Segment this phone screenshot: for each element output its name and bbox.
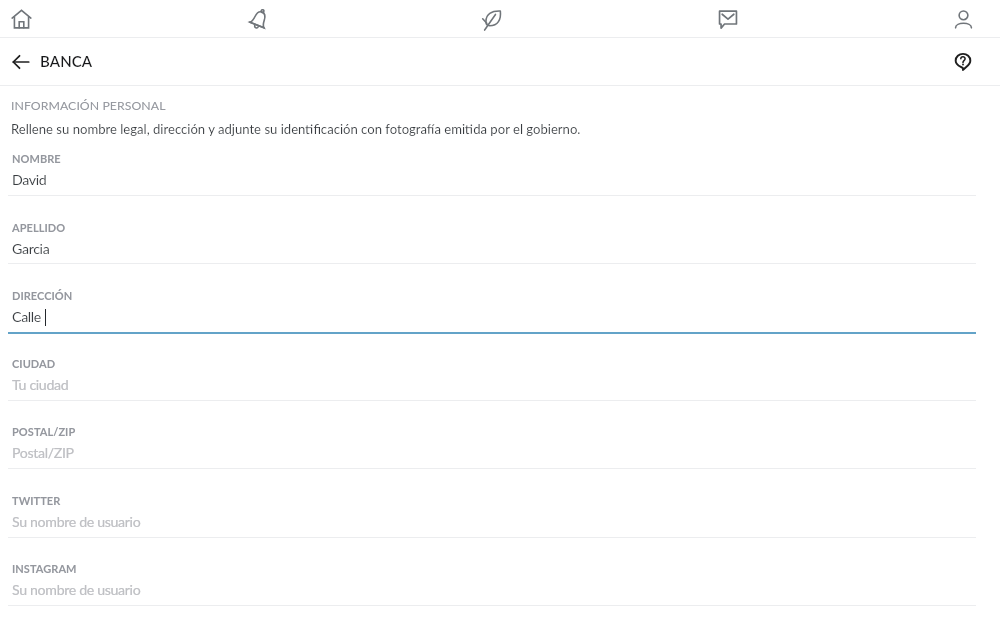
button[interactable] (8, 349, 976, 401)
button[interactable]: Back (3, 44, 39, 80)
staticText: DIRECCIÓN (12, 289, 73, 302)
staticText: Rellene su nombre legal, dirección y adj… (11, 121, 581, 137)
button[interactable] (8, 417, 976, 469)
button[interactable]: Eco (473, 0, 511, 38)
button[interactable] (8, 486, 976, 538)
button[interactable] (8, 213, 976, 265)
staticText: CIUDAD (12, 357, 56, 370)
staticText: Su nombre de usuario (12, 581, 141, 598)
staticText: Postal/ZIP (12, 444, 74, 461)
button[interactable]: Notifications (240, 0, 278, 38)
button[interactable] (8, 281, 976, 333)
staticText: NOMBRE (12, 152, 61, 165)
staticText: TWITTER (12, 494, 61, 507)
button[interactable]: Help (945, 44, 981, 80)
staticText: BANCA (40, 52, 93, 70)
button[interactable]: Messages (709, 0, 747, 38)
button[interactable]: Home (2, 0, 40, 38)
staticText: Tu ciudad (12, 376, 69, 393)
staticText: POSTAL/ZIP (12, 425, 76, 438)
button[interactable] (8, 144, 976, 196)
staticText: INSTAGRAM (12, 562, 77, 575)
staticText: Calle (12, 308, 45, 325)
staticText: Garcia (12, 240, 50, 257)
button[interactable]: Profile (944, 0, 982, 38)
staticText: APELLIDO (12, 221, 66, 234)
staticText: INFORMACIÓN PERSONAL (11, 98, 166, 113)
staticText: David (12, 171, 47, 188)
button[interactable] (8, 554, 976, 606)
staticText: Su nombre de usuario (12, 513, 141, 530)
